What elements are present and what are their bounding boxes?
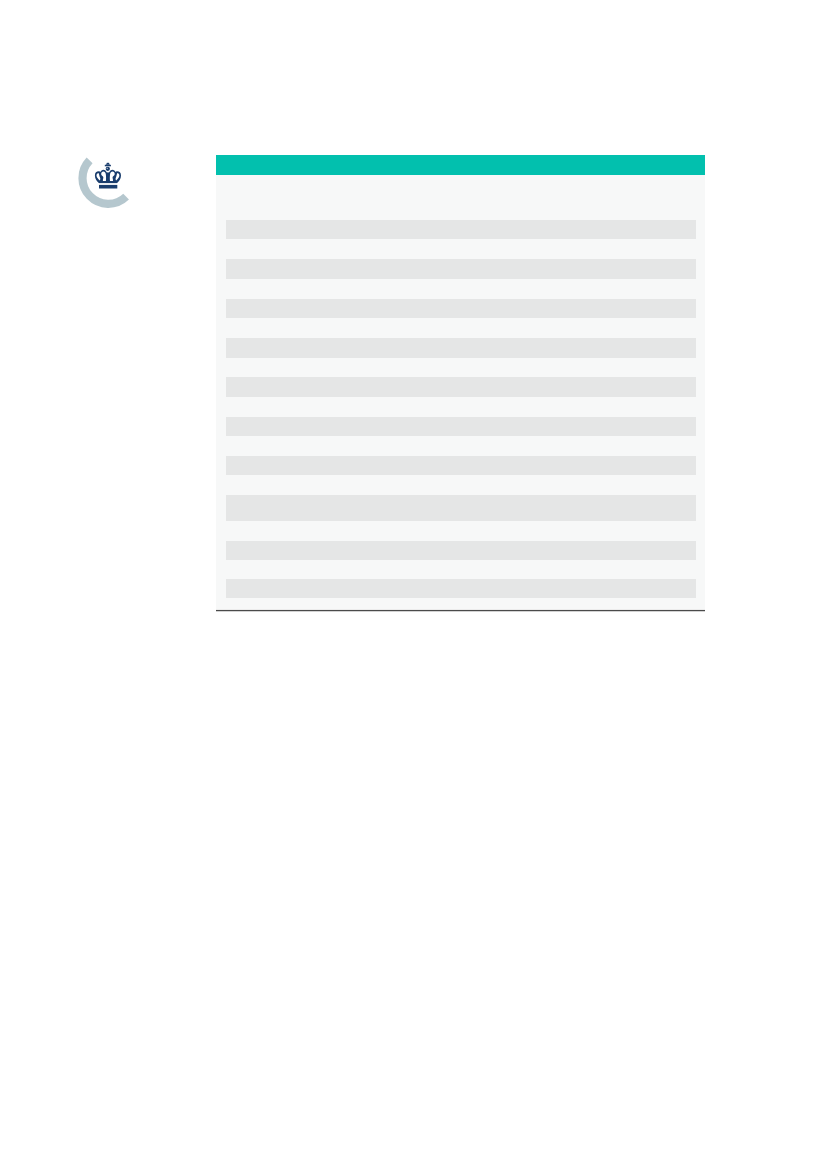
button[interactable] [216,155,705,612]
other: Loading [78,148,138,208]
